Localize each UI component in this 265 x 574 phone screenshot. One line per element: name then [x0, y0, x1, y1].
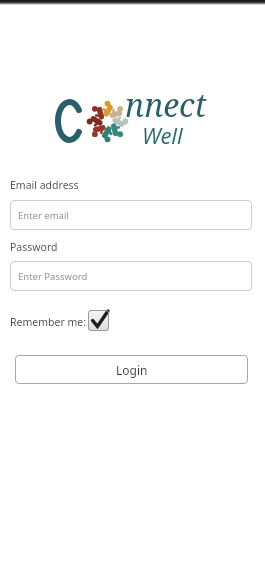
staticText: Enter Password	[18, 270, 88, 283]
staticText: Enter email	[18, 209, 69, 222]
staticText: Well	[142, 120, 183, 150]
button[interactable]: Enter Password	[10, 261, 252, 291]
button[interactable]	[88, 310, 109, 331]
button[interactable]: Login	[15, 355, 248, 384]
staticText: nnect	[125, 83, 207, 127]
button[interactable]: Enter email	[10, 200, 252, 230]
staticText: Login	[116, 362, 148, 378]
staticText: Email address	[10, 178, 79, 192]
staticText: Remember me:	[10, 315, 87, 329]
staticText: Password	[10, 240, 58, 254]
